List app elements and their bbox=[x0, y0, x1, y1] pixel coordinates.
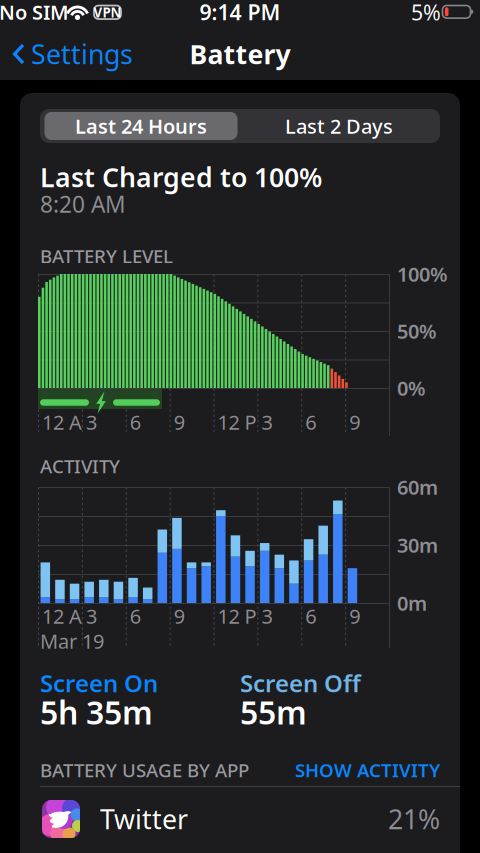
staticText: BATTERY LEVEL bbox=[40, 244, 173, 268]
staticText: Settings bbox=[31, 36, 133, 72]
staticText: SHOW ACTIVITY bbox=[295, 758, 440, 782]
staticText: 60m bbox=[397, 474, 438, 500]
staticText: Twitter bbox=[100, 801, 188, 837]
staticText: 3 bbox=[261, 603, 272, 629]
staticText: 8:20 AM bbox=[40, 189, 126, 219]
staticText: 0m bbox=[397, 590, 427, 616]
staticText: ACTIVITY bbox=[40, 454, 120, 478]
staticText: Last 2 Days bbox=[285, 113, 393, 139]
staticText: 12 P bbox=[217, 603, 256, 629]
staticText: 6 bbox=[130, 409, 141, 435]
staticText: 3 bbox=[86, 603, 97, 629]
staticText: 9 bbox=[349, 409, 360, 435]
staticText: 9 bbox=[349, 603, 360, 629]
button[interactable]: SHOW ACTIVITY bbox=[280, 758, 440, 782]
button[interactable]: Twitter bbox=[42, 791, 440, 847]
staticText: Last 24 Hours bbox=[75, 113, 207, 139]
staticText: 55m bbox=[240, 691, 307, 733]
staticText: 12 A bbox=[42, 603, 82, 629]
staticText: 30m bbox=[397, 532, 438, 558]
staticText: Mar 19 bbox=[40, 628, 104, 654]
staticText: 3 bbox=[86, 409, 97, 435]
staticText: 6 bbox=[305, 603, 316, 629]
button[interactable]: Last 24 Hours bbox=[42, 109, 239, 143]
staticText: BATTERY USAGE BY APP bbox=[40, 758, 249, 782]
staticText: 3 bbox=[261, 409, 272, 435]
staticText: 21% bbox=[388, 801, 440, 837]
staticText: 12 A bbox=[42, 409, 82, 435]
staticText: 12 P bbox=[217, 409, 256, 435]
staticText: 9 bbox=[174, 409, 185, 435]
staticText: 6 bbox=[305, 409, 316, 435]
staticText: 6 bbox=[130, 603, 141, 629]
staticText: 50% bbox=[397, 318, 437, 344]
staticText: 9 bbox=[174, 603, 185, 629]
staticText: Screen On bbox=[40, 667, 158, 699]
staticText: Last Charged to 100% bbox=[40, 159, 322, 195]
staticText: 9:14 PM bbox=[199, 0, 280, 26]
staticText: 5% bbox=[411, 0, 441, 26]
button[interactable]: Back to Settings bbox=[12, 34, 142, 74]
staticText: No SIM bbox=[0, 0, 69, 25]
staticText: 100% bbox=[397, 261, 448, 287]
staticText: VPN bbox=[93, 3, 121, 21]
staticText: 0% bbox=[397, 375, 426, 401]
button[interactable]: Last 2 Days bbox=[240, 109, 437, 143]
staticText: Battery bbox=[189, 36, 290, 72]
staticText: Screen Off bbox=[240, 667, 361, 699]
staticText: 5h 35m bbox=[40, 691, 153, 733]
